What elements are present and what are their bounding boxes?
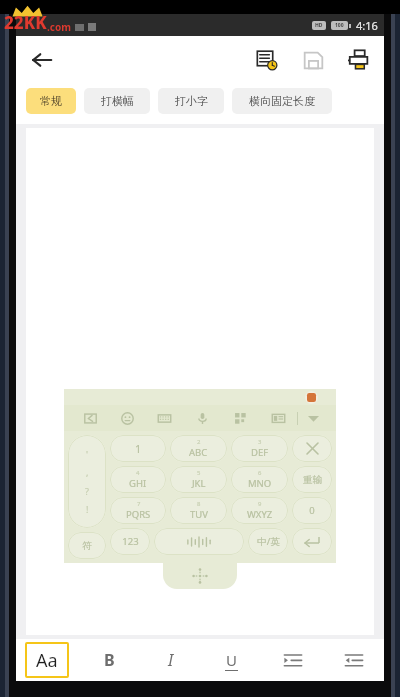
button[interactable]: 中/英	[248, 528, 288, 555]
button[interactable]: 3	[231, 435, 288, 462]
button[interactable]: B	[78, 639, 140, 681]
staticText: .com	[47, 20, 71, 34]
button[interactable]: 1	[110, 435, 166, 462]
staticText: 4:16	[356, 18, 378, 33]
button[interactable]: Delete	[292, 435, 332, 462]
staticText: WXYZ	[247, 508, 273, 521]
staticText: 常规	[40, 94, 62, 108]
staticText: 5	[197, 469, 201, 477]
staticText: TUV	[190, 508, 208, 521]
staticText: DEF	[251, 446, 269, 459]
staticText: JKL	[192, 477, 206, 490]
button[interactable]: Save	[294, 41, 332, 79]
staticText: 符	[82, 540, 92, 552]
button[interactable]: 7	[110, 497, 166, 524]
button[interactable]: 6	[231, 466, 288, 493]
staticText: HD	[315, 22, 323, 29]
staticText: 打小字	[175, 94, 208, 108]
staticText: 123	[122, 535, 139, 548]
button[interactable]: 4	[110, 466, 166, 493]
button[interactable]: 0	[292, 497, 332, 524]
staticText: 22KK	[4, 11, 47, 34]
button[interactable]: 8	[170, 497, 227, 524]
button[interactable]: Increase indent	[262, 639, 323, 681]
button[interactable]: U	[201, 639, 262, 681]
staticText: 7	[137, 500, 141, 508]
button[interactable]: Aa	[25, 642, 69, 678]
staticText: 打横幅	[101, 94, 134, 108]
button[interactable]: Hide keyboard	[298, 405, 328, 431]
staticText: 1	[135, 441, 142, 456]
button[interactable]: '	[68, 435, 106, 528]
button[interactable]: 9	[231, 497, 288, 524]
button[interactable]: 5	[170, 466, 227, 493]
button[interactable]: S	[72, 405, 109, 431]
button[interactable]: kb	[146, 405, 183, 431]
staticText: 重输	[303, 474, 322, 486]
button[interactable]: emoji	[109, 405, 146, 431]
button[interactable]: Move keyboard	[163, 563, 237, 589]
button[interactable]: 常规	[26, 88, 76, 114]
staticText: 4	[136, 469, 140, 477]
staticText: 中/英	[257, 535, 280, 548]
staticText: 100	[335, 22, 344, 29]
button[interactable]: card	[259, 405, 297, 431]
staticText: 9	[258, 500, 262, 508]
staticText: B	[104, 649, 115, 671]
staticText: 横向固定长度	[249, 94, 315, 108]
button[interactable]: 打横幅	[84, 88, 150, 114]
staticText: !	[86, 503, 89, 515]
staticText: ,	[86, 466, 89, 478]
staticText: 2	[197, 438, 201, 446]
button[interactable]: History	[248, 41, 286, 79]
staticText: 8	[197, 500, 201, 508]
button[interactable]: 符	[68, 532, 106, 559]
button[interactable]: I	[140, 639, 201, 681]
button[interactable]: Enter	[292, 528, 332, 555]
staticText: GHI	[129, 477, 147, 490]
staticText: ABC	[189, 446, 208, 459]
staticText: PQRS	[126, 508, 151, 521]
staticText: 6	[258, 469, 262, 477]
button[interactable]: mic	[183, 405, 221, 431]
button[interactable]: Print	[340, 41, 378, 79]
button[interactable]: grid	[221, 405, 259, 431]
staticText: 0	[309, 504, 315, 517]
button[interactable]: 重输	[292, 466, 332, 493]
staticText: ?	[85, 485, 89, 497]
button[interactable]: 2	[170, 435, 227, 462]
button[interactable]: 横向固定长度	[232, 88, 332, 114]
staticText: '	[86, 448, 89, 460]
staticText: I	[168, 649, 174, 671]
staticText: 3	[258, 438, 262, 446]
button[interactable]: Back	[22, 40, 62, 80]
staticText: MNO	[248, 477, 272, 490]
button[interactable]: Space	[154, 528, 244, 555]
staticText: Aa	[36, 648, 58, 673]
button[interactable]: Decrease indent	[323, 639, 384, 681]
staticText: U	[226, 650, 237, 670]
button[interactable]: 打小字	[158, 88, 224, 114]
button[interactable]: 123	[110, 528, 150, 555]
